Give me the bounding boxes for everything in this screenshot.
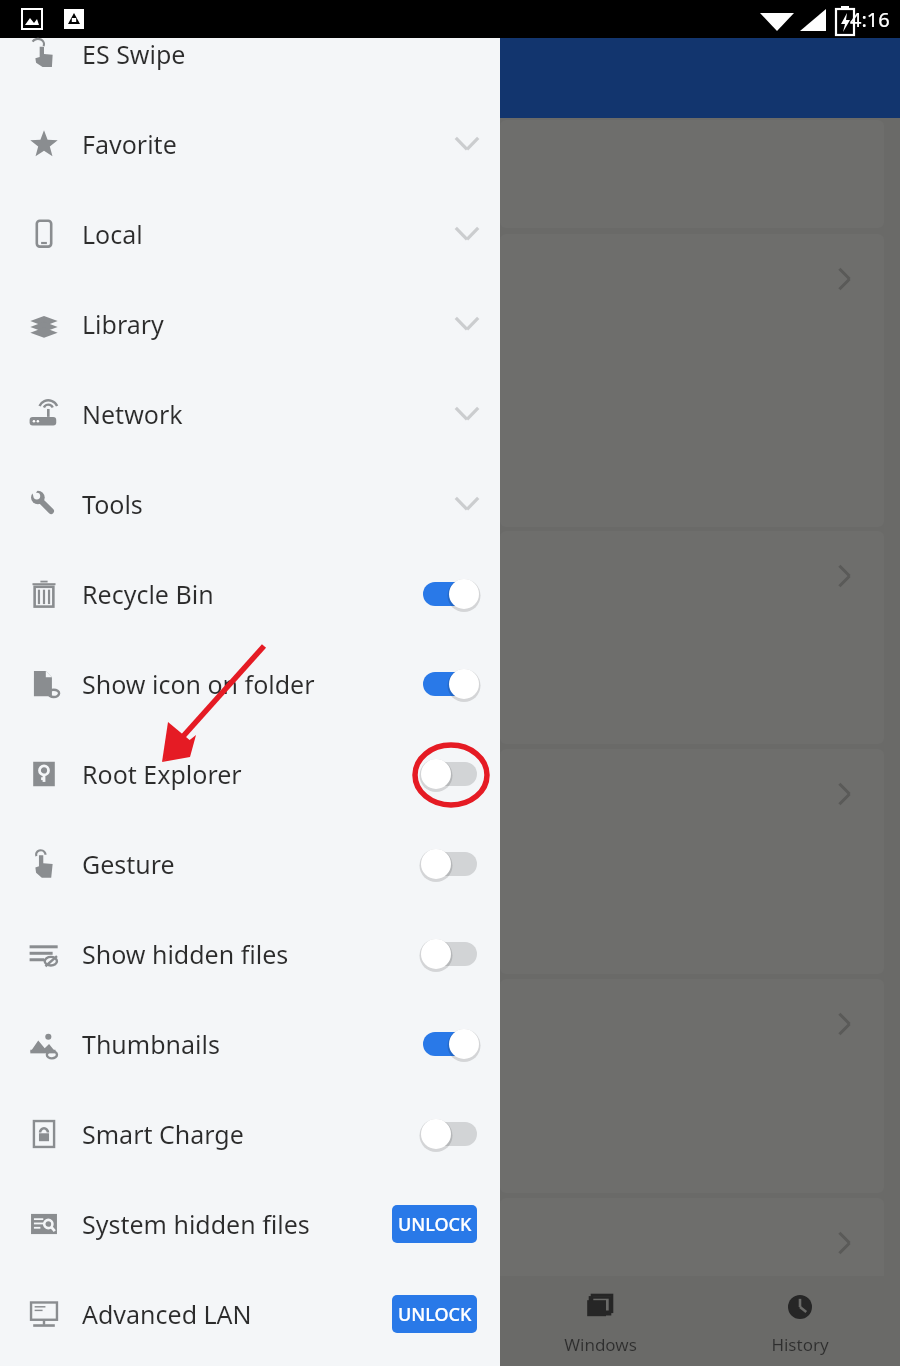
button[interactable]: Windows (500, 1276, 700, 1366)
button[interactable]: Advanced LAN (0, 1269, 500, 1359)
button[interactable]: System hidden files (0, 1179, 500, 1269)
button[interactable] (423, 574, 477, 614)
staticText: Local (82, 217, 143, 251)
button[interactable] (423, 1114, 477, 1154)
staticText: ES Swipe (82, 37, 186, 71)
staticText: Favorite (82, 127, 177, 161)
button[interactable]: ES Swipe (0, 9, 500, 99)
staticText: Thumbnails (82, 1027, 220, 1061)
staticText: Windows (564, 1333, 637, 1356)
button[interactable] (423, 844, 477, 884)
staticText: Library (82, 307, 164, 341)
button[interactable]: Smart Charge (0, 1089, 500, 1179)
button[interactable]: Root Explorer (0, 729, 500, 819)
button[interactable]: History (700, 1276, 900, 1366)
staticText: Network (82, 397, 183, 431)
button[interactable]: UNLOCK (392, 1205, 477, 1243)
staticText: Advanced LAN (82, 1297, 252, 1331)
staticText: Root Explorer (82, 757, 242, 791)
button[interactable]: Show hidden files (0, 909, 500, 999)
staticText: System hidden files (82, 1207, 310, 1241)
button[interactable] (423, 1024, 477, 1064)
button[interactable]: Tools (0, 459, 500, 549)
button[interactable]: Gesture (0, 819, 500, 909)
button[interactable]: Library (0, 279, 500, 369)
staticText: Tools (82, 487, 143, 521)
staticText: Gesture (82, 847, 175, 881)
staticText: Show icon on folder (82, 667, 315, 701)
button[interactable]: Thumbnails (0, 999, 500, 1089)
staticText: History (771, 1333, 829, 1356)
button[interactable] (423, 934, 477, 974)
staticText: Smart Charge (82, 1117, 244, 1151)
staticText: UNLOCK (398, 1302, 472, 1327)
button[interactable] (423, 664, 477, 704)
staticText: UNLOCK (398, 1212, 472, 1237)
button[interactable]: Recycle Bin (0, 549, 500, 639)
staticText: 4:16 (850, 6, 890, 33)
button[interactable]: Local (0, 189, 500, 279)
staticText: Recycle Bin (82, 577, 214, 611)
button[interactable] (500, 1198, 884, 1320)
button[interactable]: Network (0, 369, 500, 459)
button[interactable]: Show icon on folder (0, 639, 500, 729)
button[interactable]: UNLOCK (392, 1295, 477, 1333)
button[interactable]: Favorite (0, 99, 500, 189)
button[interactable] (423, 754, 477, 794)
staticText: Show hidden files (82, 937, 289, 971)
